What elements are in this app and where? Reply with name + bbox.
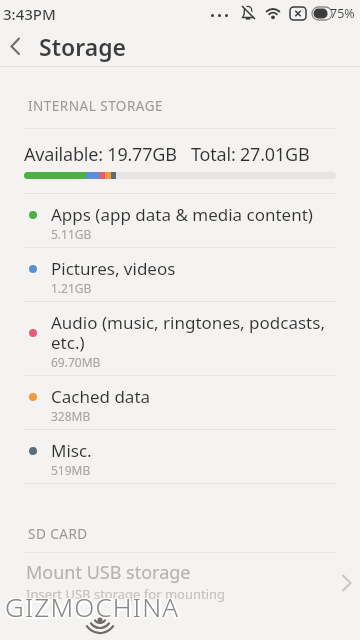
staticText: INTERNAL STORAGE <box>28 97 163 115</box>
staticText: 1.21GB <box>51 280 92 296</box>
staticText: 3:43PM <box>3 4 56 24</box>
staticText: GIZMOCHINA <box>4 588 179 623</box>
staticText: 328MB <box>51 408 91 424</box>
staticText: Available: 19.77GB <box>24 142 177 167</box>
button[interactable] <box>0 26 36 66</box>
button[interactable]: Pictures, videos <box>0 248 360 301</box>
staticText: 75% <box>330 5 355 22</box>
button[interactable]: Audio (music, ringtones, podcasts, etc.) <box>0 302 360 375</box>
staticText: Mount USB storage <box>26 560 191 585</box>
staticText: GIZMOCHINA <box>7 589 182 624</box>
staticText: SD CARD <box>28 525 88 543</box>
staticText: Misc. <box>51 439 92 462</box>
staticText: GIZMOCHINA <box>7 591 182 626</box>
staticText: 69.70MB <box>51 354 101 370</box>
staticText: GIZMOCHINA <box>4 591 179 626</box>
staticText: 519MB <box>51 462 91 478</box>
staticText: 5.11GB <box>51 226 92 242</box>
staticText: Audio (music, ringtones, podcasts, etc.) <box>51 311 342 354</box>
staticText: GIZMOCHINA <box>4 589 179 624</box>
staticText: GIZMOCHINA <box>5 591 180 626</box>
button[interactable]: Misc. <box>0 430 360 483</box>
staticText: Storage <box>39 31 127 62</box>
staticText: GIZMOCHINA <box>5 589 180 624</box>
button[interactable]: Cached data <box>0 376 360 429</box>
staticText: Cached data <box>51 385 151 408</box>
staticText: Insert USB storage for mounting <box>26 585 226 603</box>
button[interactable]: Apps (app data & media content) <box>0 194 360 247</box>
staticText: Total: 27.01GB <box>191 142 310 167</box>
staticText: GIZMOCHINA <box>5 588 180 623</box>
staticText: Pictures, videos <box>51 257 176 280</box>
staticText: Apps (app data & media content) <box>51 203 313 226</box>
button[interactable]: Mount USB storage <box>0 553 360 613</box>
staticText: GIZMOCHINA <box>7 588 182 623</box>
